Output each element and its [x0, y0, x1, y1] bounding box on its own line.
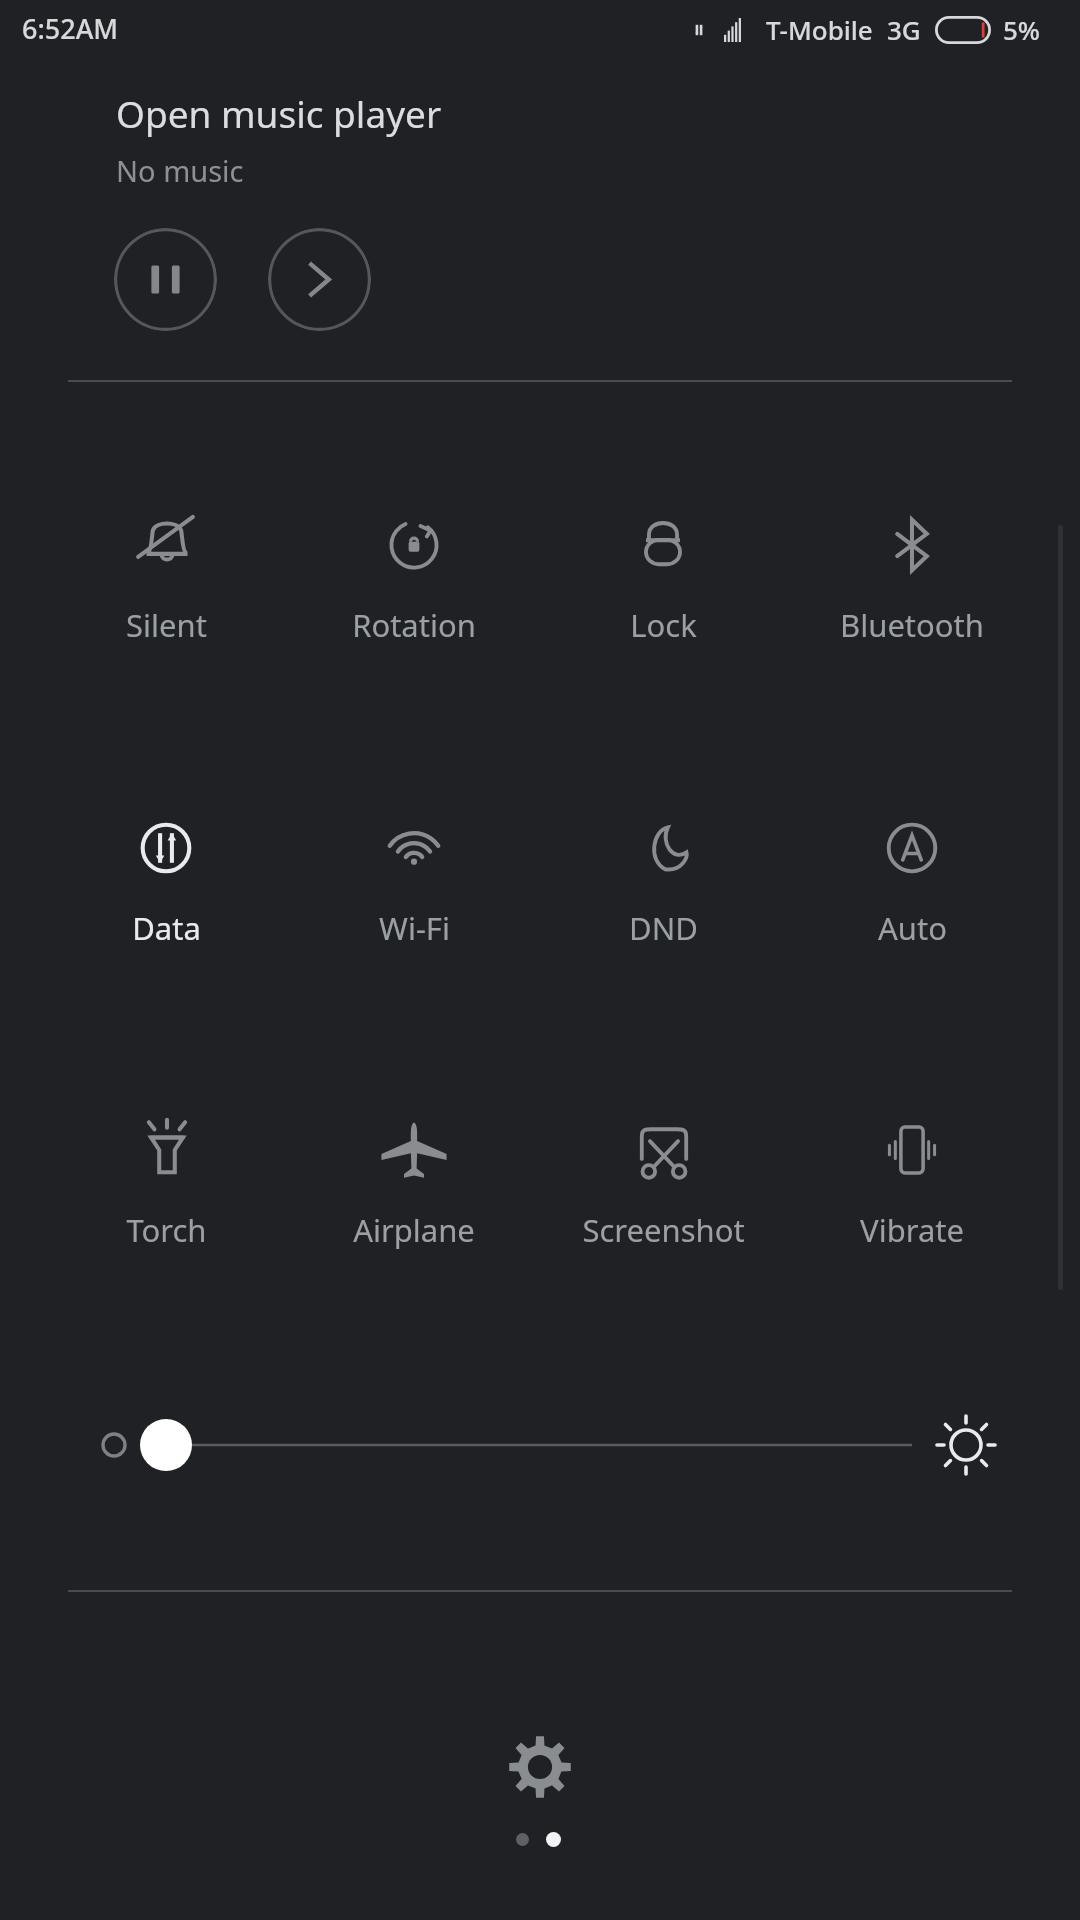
button[interactable]	[546, 1832, 561, 1847]
staticText: Vibrate	[860, 1209, 964, 1251]
staticText: 6:52AM	[22, 10, 119, 47]
staticText: Lock	[630, 604, 697, 646]
button[interactable]: Screenshot	[545, 1113, 781, 1309]
button[interactable]	[516, 1833, 529, 1846]
staticText: Silent	[126, 604, 207, 646]
button[interactable]: Silent	[48, 508, 284, 704]
button[interactable]: Bluetooth	[794, 508, 1030, 704]
button[interactable]: Airplane	[296, 1113, 532, 1309]
staticText: Open music player	[116, 88, 442, 138]
staticText: Bluetooth	[840, 604, 984, 646]
button[interactable]: Pause	[114, 228, 217, 331]
button[interactable]: Lock	[545, 508, 781, 704]
button[interactable]: Wi-Fi	[296, 811, 532, 1007]
staticText: 3G	[887, 12, 921, 47]
staticText: Screenshot	[582, 1209, 745, 1251]
staticText: No music	[116, 151, 244, 190]
button[interactable]: Auto	[794, 811, 1030, 1007]
button[interactable]: Brightness	[68, 1390, 1012, 1500]
button[interactable]: Settings	[488, 1715, 592, 1819]
staticText: T-Mobile	[766, 12, 873, 47]
staticText: Rotation	[352, 604, 476, 646]
button[interactable]: Vibrate	[794, 1113, 1030, 1309]
button[interactable]: Next	[268, 228, 371, 331]
button[interactable]: Rotation	[296, 508, 532, 704]
staticText: 5%	[1003, 12, 1041, 47]
staticText: Auto	[878, 907, 947, 949]
staticText: Airplane	[353, 1209, 475, 1251]
staticText: Torch	[126, 1209, 207, 1251]
button[interactable]: Open music player	[116, 88, 442, 138]
staticText: DND	[629, 907, 698, 949]
staticText: Wi-Fi	[379, 907, 450, 949]
button[interactable]: Data	[48, 811, 284, 1007]
button[interactable]: DND	[545, 811, 781, 1007]
staticText: Data	[132, 907, 201, 949]
button[interactable]: Torch	[48, 1113, 284, 1309]
